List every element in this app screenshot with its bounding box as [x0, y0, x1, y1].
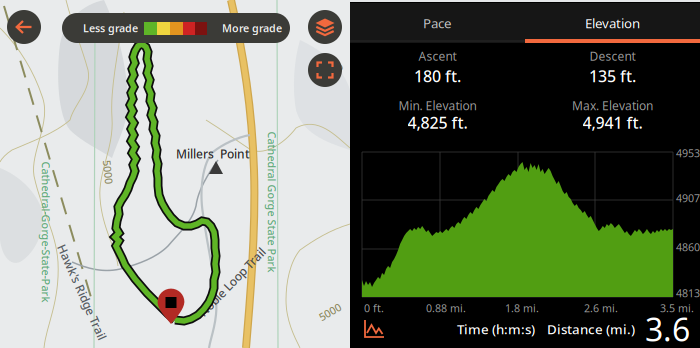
staticText: 4813: [676, 286, 700, 300]
staticText: 4,825 ft.: [407, 112, 467, 133]
staticText: Min. Elevation: [398, 97, 476, 113]
staticText: Distance (mi.): [547, 320, 635, 338]
button[interactable]: Pace: [350, 3, 525, 43]
staticText: Descent: [589, 48, 635, 64]
staticText: 4860: [676, 240, 700, 254]
button[interactable]: Chart type: [358, 315, 390, 343]
staticText: Cathedral Gorge State Park: [201, 195, 342, 209]
staticText: Millers Point: [176, 146, 250, 162]
staticText: 180 ft.: [414, 65, 461, 87]
staticText: Hawk's Ridge Trail: [30, 284, 133, 300]
staticText: 5000: [320, 65, 344, 79]
staticText: Less grade: [83, 21, 138, 35]
staticText: 3.5 mi.: [660, 301, 694, 315]
staticText: More grade: [222, 21, 282, 35]
staticText: 0 ft.: [364, 301, 384, 315]
staticText: 0.88 mi.: [426, 301, 466, 315]
staticText: Cathedral-Gorge-State-Park: [0, 225, 116, 239]
staticText: Time (h:m:s): [457, 320, 535, 338]
button[interactable]: Elevation: [525, 3, 700, 43]
button[interactable]: Full screen: [308, 53, 342, 87]
button[interactable]: Back: [7, 10, 41, 44]
staticText: 135 ft.: [589, 65, 636, 87]
staticText: 4,941 ft.: [582, 112, 642, 133]
staticText: Noble Loop Trail: [187, 274, 277, 290]
staticText: 4907: [676, 191, 700, 205]
staticText: 5000: [318, 305, 342, 319]
staticText: Max. Elevation: [572, 97, 653, 113]
staticText: 3.6: [645, 308, 690, 348]
staticText: 1.8 mi.: [505, 301, 539, 315]
staticText: Pace: [423, 14, 452, 32]
staticText: Elevation: [585, 14, 640, 32]
staticText: 2.6 mi.: [584, 301, 618, 315]
button[interactable]: Map layers: [308, 10, 342, 44]
staticText: Ascent: [418, 48, 456, 64]
staticText: 5000: [96, 165, 120, 179]
staticText: 4953: [676, 146, 700, 160]
